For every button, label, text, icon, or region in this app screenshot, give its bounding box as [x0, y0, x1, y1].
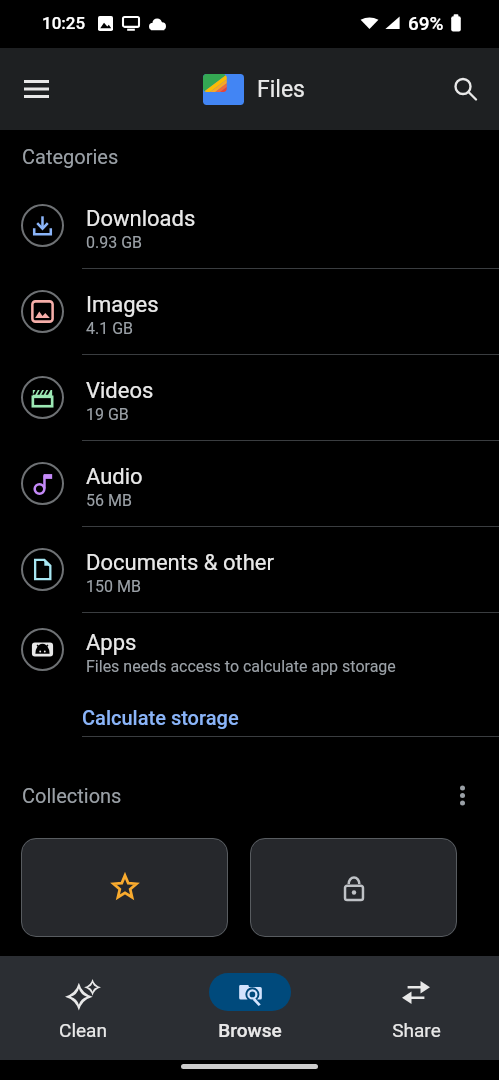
button[interactable]: Safe folder	[250, 838, 457, 937]
button[interactable]: Images	[0, 269, 499, 355]
button[interactable]: Downloads	[0, 183, 499, 269]
staticText: 10:25	[42, 13, 86, 33]
staticText: 4.1 GB	[86, 319, 134, 338]
staticText: Documents & other	[86, 550, 274, 576]
staticText: 0.93 GB	[86, 233, 143, 252]
button[interactable]: Clean	[8, 956, 158, 1041]
staticText: 19 GB	[86, 405, 129, 424]
button[interactable]: More options	[443, 776, 481, 814]
staticText: Categories	[22, 145, 119, 168]
button[interactable]: Share	[341, 956, 491, 1041]
staticText: Downloads	[86, 206, 196, 232]
staticText: Files needs access to calculate app stor…	[86, 657, 396, 676]
staticText: Browse	[218, 1019, 282, 1041]
staticText: Collections	[22, 784, 122, 807]
staticText: Audio	[86, 464, 143, 490]
staticText: Share	[392, 1019, 441, 1041]
staticText: 56 MB	[86, 491, 132, 510]
button[interactable]: Videos	[0, 355, 499, 441]
button[interactable]: Audio	[0, 441, 499, 527]
staticText: Clean	[59, 1019, 107, 1041]
staticText: Files	[257, 76, 305, 103]
staticText: Videos	[86, 378, 154, 404]
button[interactable]: Navigation menu	[12, 65, 60, 113]
button[interactable]: Starred	[21, 838, 228, 937]
staticText: 150 MB	[86, 577, 141, 596]
button[interactable]: Browse	[175, 956, 325, 1041]
staticText: Images	[86, 292, 159, 318]
staticText: Apps	[86, 630, 137, 656]
staticText: 69%	[408, 12, 444, 34]
button[interactable]: Documents & other	[0, 527, 499, 613]
button[interactable]: Calculate storage	[78, 686, 247, 736]
staticText: Calculate storage	[82, 706, 239, 729]
button[interactable]: Search	[441, 65, 489, 113]
button[interactable]: Apps	[21, 613, 499, 686]
